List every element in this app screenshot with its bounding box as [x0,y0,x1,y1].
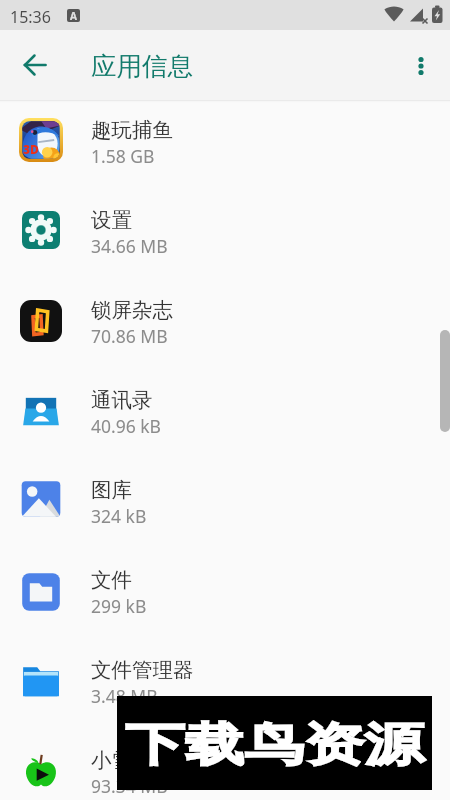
staticText: 15:36 [10,6,51,28]
button[interactable]: 文件 [0,551,450,641]
button[interactable]: Back [11,41,59,89]
staticText: 3.48 MB [91,684,158,708]
staticText: 70.86 MB [91,324,168,348]
staticText: 324 kB [91,504,147,528]
staticText: 锁屏杂志 [91,297,173,323]
button[interactable]: 文件管理器 [0,641,450,731]
staticText: 文件 [91,567,132,593]
staticText: 下载鸟资源 [125,717,424,774]
button[interactable]: 图库 [0,461,450,551]
button[interactable]: More options [398,43,444,89]
button[interactable]: 3D [0,101,450,191]
staticText: 设置 [91,207,132,233]
staticText: 3D [23,141,39,157]
staticText: 34.66 MB [91,234,168,258]
staticText: A [70,9,77,22]
button[interactable]: 锁屏杂志 [0,281,450,371]
staticText: 通讯录 [91,387,153,413]
staticText: 文件管理器 [91,657,194,683]
button[interactable]: 设置 [0,191,450,281]
staticText: 299 kB [91,594,147,618]
button[interactable]: 小雪球 [0,731,450,800]
staticText: 趣玩捕鱼 [91,117,173,143]
staticText: 40.96 kB [91,414,161,438]
button[interactable]: 通讯录 [0,371,450,461]
staticText: 小雪球 [91,747,153,773]
staticText: 1.58 GB [91,144,155,168]
staticText: 图库 [91,477,132,503]
staticText: 应用信息 [91,50,193,82]
staticText: 93.34 MB [91,774,168,798]
